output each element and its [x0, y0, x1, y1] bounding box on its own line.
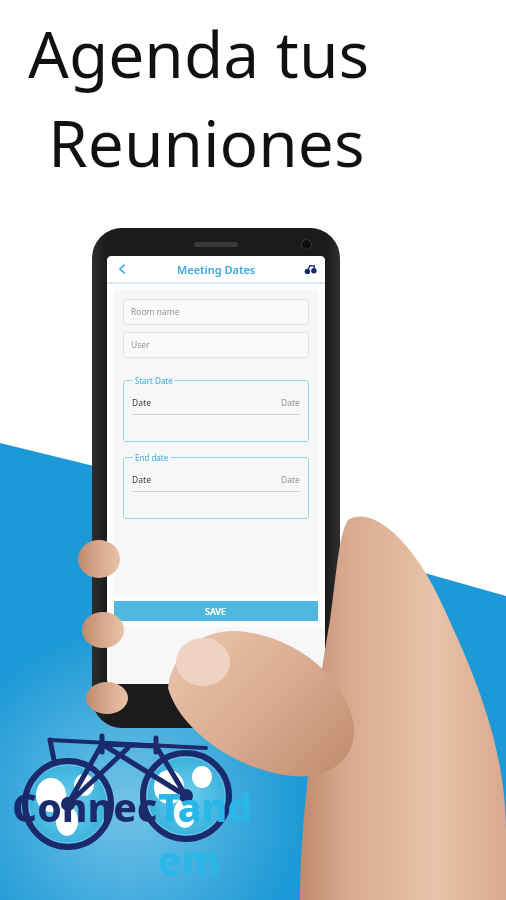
button[interactable]: Date	[123, 380, 309, 442]
button[interactable]: Back	[113, 260, 131, 278]
button[interactable]: Room name	[123, 299, 309, 325]
staticText: Meeting Dates	[177, 262, 256, 277]
staticText: Start Date	[135, 375, 173, 386]
staticText: Date	[132, 397, 152, 409]
button[interactable]: Date	[123, 457, 309, 519]
staticText: User	[131, 339, 150, 351]
staticText: Date	[281, 397, 300, 409]
button[interactable]: ConnecTandem logo	[6, 726, 262, 894]
staticText: Connec	[12, 780, 158, 833]
staticText: Date	[281, 474, 300, 486]
staticText: End date	[135, 452, 169, 463]
staticText: Tandem	[158, 780, 268, 886]
staticText: Reuniones	[48, 99, 365, 186]
staticText: Date	[132, 474, 152, 486]
staticText: Room name	[131, 306, 180, 318]
staticText: Agenda tus	[28, 10, 370, 97]
button[interactable]: User	[123, 332, 309, 358]
staticText: SAVE	[205, 605, 227, 617]
button[interactable]: SAVE	[114, 601, 318, 621]
button[interactable]: App logo	[301, 260, 319, 278]
